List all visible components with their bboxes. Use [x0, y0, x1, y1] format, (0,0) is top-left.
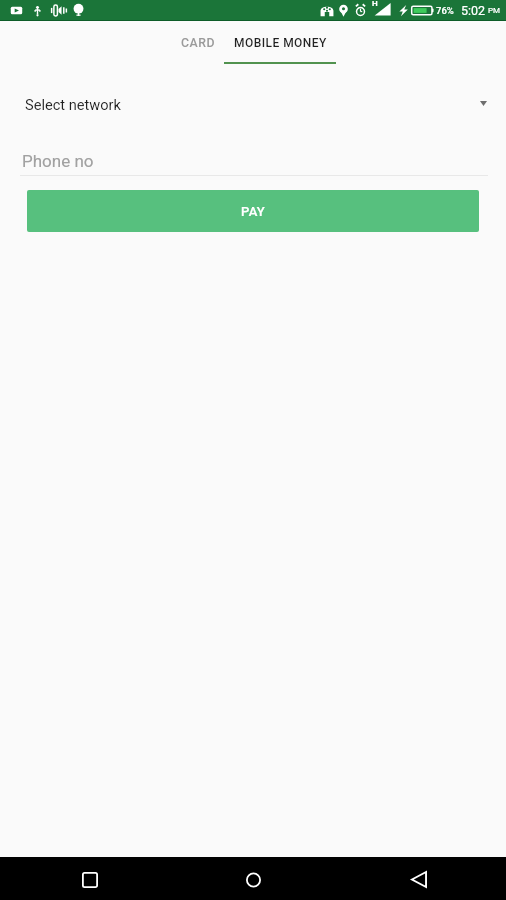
staticText: 76%: [436, 5, 454, 16]
staticText: 5:02: [461, 3, 486, 18]
staticText: PM: [488, 6, 501, 15]
button[interactable]: Recents: [61, 857, 118, 900]
staticText: Phone no: [22, 151, 94, 171]
button[interactable]: Select network: [0, 88, 506, 120]
staticText: PAY: [241, 204, 266, 219]
button[interactable]: Back: [390, 857, 447, 900]
staticText: MOBILE MONEY: [234, 36, 327, 50]
staticText: H: [372, 0, 378, 8]
button[interactable]: Home: [225, 857, 282, 900]
button[interactable]: MOBILE MONEY: [224, 21, 336, 64]
button[interactable]: Phone no: [0, 151, 506, 171]
button[interactable]: CARD: [168, 21, 224, 64]
button[interactable]: PAY: [27, 190, 479, 232]
staticText: CARD: [181, 36, 215, 50]
staticText: Select network: [25, 96, 121, 113]
